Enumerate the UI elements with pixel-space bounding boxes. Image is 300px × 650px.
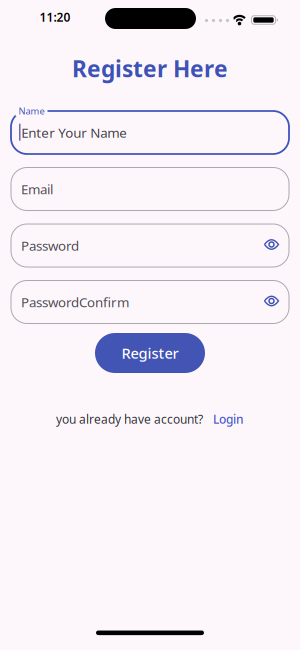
staticText: you already have account? (56, 411, 203, 427)
button[interactable]: Login (213, 411, 244, 427)
button[interactable]: Register (95, 333, 205, 373)
staticText: Login (213, 411, 244, 427)
button[interactable] (263, 237, 279, 251)
staticText: Password (21, 237, 79, 254)
staticText: Register Here (72, 53, 228, 83)
staticText: 11:20 (39, 9, 70, 25)
staticText: PasswordConfirm (21, 293, 129, 311)
button[interactable] (263, 294, 279, 308)
staticText: Enter Your Name (21, 124, 127, 141)
staticText: Register (121, 343, 178, 363)
staticText: Name (18, 105, 44, 117)
staticText: Email (21, 180, 53, 198)
